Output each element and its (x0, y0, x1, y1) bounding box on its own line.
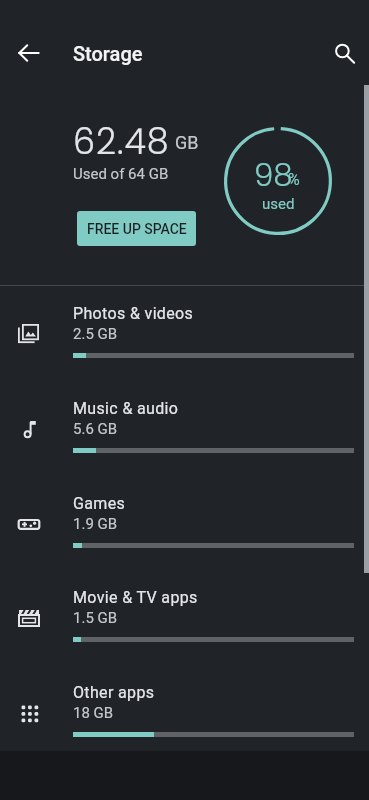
staticText: Other apps (73, 683, 155, 702)
staticText: 1.5 GB (73, 609, 118, 627)
staticText: 18 GB (73, 704, 114, 722)
staticText: Used of 64 GB (73, 165, 169, 183)
button[interactable]: Search (322, 31, 366, 75)
button[interactable]: Back (7, 31, 51, 75)
staticText: FREE UP SPACE (87, 221, 187, 237)
staticText: 1.9 GB (73, 515, 118, 533)
staticText: Music & audio (73, 399, 179, 418)
button[interactable]: Other apps (0, 676, 369, 770)
staticText: Photos & videos (73, 304, 194, 323)
staticText: 2.5 GB (73, 325, 118, 343)
staticText: GB (175, 132, 199, 153)
button[interactable]: Photos & videos (0, 297, 369, 391)
staticText: % (288, 170, 300, 189)
staticText: Storage (73, 42, 143, 65)
button[interactable]: FREE UP SPACE (77, 211, 196, 246)
staticText: 98 (254, 153, 293, 196)
staticText: Games (73, 494, 126, 513)
staticText: Movie & TV apps (73, 588, 198, 607)
button[interactable]: Music & audio (0, 392, 369, 486)
staticText: used (262, 195, 295, 213)
button[interactable]: Movie & TV apps (0, 581, 369, 675)
button[interactable]: Games (0, 487, 369, 581)
staticText: 5.6 GB (73, 420, 118, 438)
staticText: 62.48 (73, 117, 170, 166)
